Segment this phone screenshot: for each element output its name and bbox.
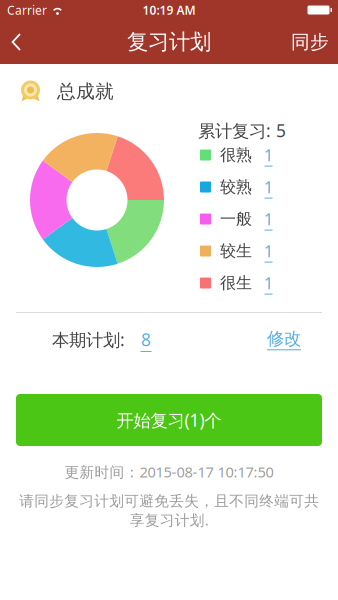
staticText: 1 bbox=[264, 240, 273, 262]
staticText: 请同步复习计划可避免丢失，且不同终端可共享复习计划. bbox=[19, 492, 319, 529]
button[interactable]: 修改 bbox=[267, 328, 301, 349]
staticText: 1 bbox=[264, 144, 273, 166]
staticText: 1 bbox=[264, 272, 273, 294]
staticText: 很熟 bbox=[220, 145, 252, 165]
staticText: 复习计划 bbox=[127, 29, 211, 55]
staticText: 1 bbox=[264, 208, 273, 230]
staticText: 同步 bbox=[291, 30, 329, 53]
staticText: 1 bbox=[264, 176, 273, 198]
button[interactable]: 8 bbox=[141, 328, 151, 351]
staticText: 本期计划: bbox=[52, 328, 125, 351]
button[interactable]: Back bbox=[0, 21, 55, 63]
staticText: 更新时间：2015-08-17 10:17:50 bbox=[64, 462, 273, 481]
button[interactable]: 1 bbox=[264, 176, 273, 198]
button[interactable]: 开始复习(1)个 bbox=[16, 394, 322, 446]
staticText: 8 bbox=[141, 328, 151, 351]
staticText: 较熟 bbox=[220, 177, 252, 197]
staticText: 很生 bbox=[220, 273, 252, 293]
button[interactable]: 1 bbox=[264, 208, 273, 230]
button[interactable]: 1 bbox=[264, 240, 273, 262]
staticText: 总成就 bbox=[57, 80, 114, 103]
staticText: 一般 bbox=[220, 209, 252, 229]
staticText: Carrier bbox=[7, 2, 47, 18]
button[interactable]: 1 bbox=[264, 272, 273, 294]
staticText: 累计复习: 5 bbox=[198, 119, 286, 142]
button[interactable]: 同步 bbox=[282, 21, 338, 63]
staticText: 较生 bbox=[220, 241, 252, 261]
staticText: 开始复习(1)个 bbox=[116, 408, 221, 431]
button[interactable]: 1 bbox=[264, 144, 273, 166]
staticText: 10:19 AM bbox=[142, 2, 195, 18]
staticText: 修改 bbox=[267, 328, 301, 349]
